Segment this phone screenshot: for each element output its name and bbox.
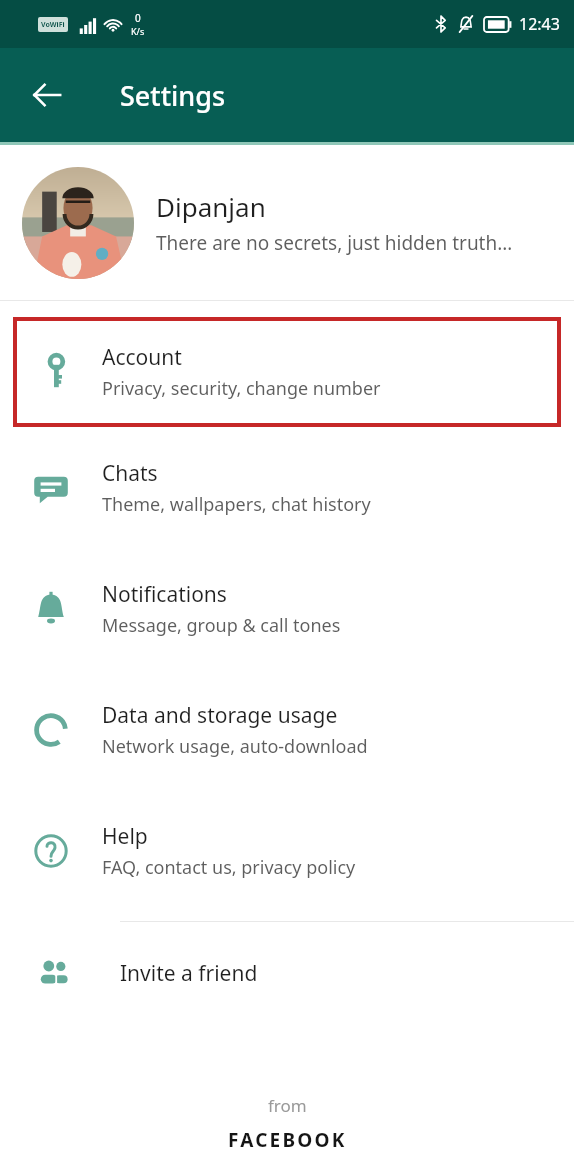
- staticText: 0: [135, 11, 141, 25]
- staticText: Network usage, auto-download: [102, 734, 368, 759]
- button[interactable]: Account: [13, 317, 561, 427]
- staticText: Dipanjan: [156, 189, 266, 224]
- staticText: Privacy, security, change number: [102, 376, 381, 401]
- staticText: FACEBOOK: [228, 1127, 347, 1153]
- button[interactable]: Back: [18, 66, 76, 124]
- button[interactable]: Chats: [0, 427, 574, 548]
- staticText: VoWiFi: [41, 20, 65, 30]
- staticText: from: [268, 1094, 307, 1117]
- staticText: Account: [102, 343, 182, 372]
- staticText: Invite a friend: [120, 959, 258, 988]
- staticText: K/s: [131, 25, 145, 37]
- staticText: Theme, wallpapers, chat history: [102, 492, 371, 517]
- staticText: Help: [102, 822, 148, 851]
- staticText: There are no secrets, just hidden truth…: [156, 230, 513, 256]
- staticText: FAQ, contact us, privacy policy: [102, 855, 356, 880]
- button[interactable]: Notifications: [0, 548, 574, 669]
- staticText: Message, group & call tones: [102, 613, 341, 638]
- button[interactable]: Data and storage usage: [0, 669, 574, 790]
- button[interactable]: Invite a friend: [0, 922, 574, 1025]
- staticText: Settings: [120, 77, 226, 114]
- button[interactable]: Dipanjan: [0, 145, 574, 300]
- staticText: 12:43: [519, 13, 560, 35]
- button[interactable]: Help: [0, 790, 574, 911]
- staticText: Notifications: [102, 580, 227, 609]
- staticText: Chats: [102, 459, 158, 488]
- staticText: Data and storage usage: [102, 701, 338, 730]
